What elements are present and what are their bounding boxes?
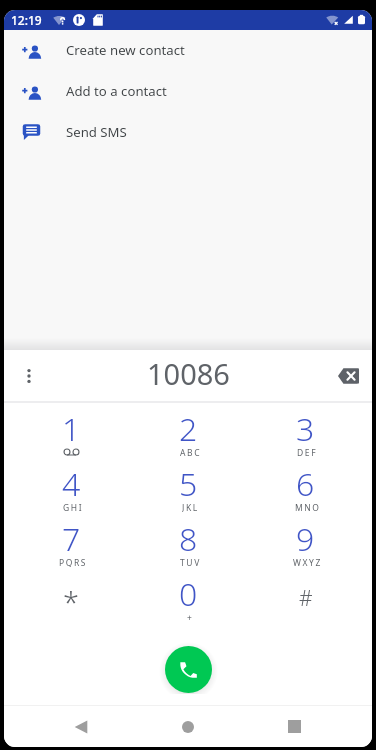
staticText: 6 [296, 462, 315, 504]
button[interactable]: Call [165, 646, 212, 693]
button[interactable]: * [12, 568, 130, 623]
staticText: Add to a contact [66, 82, 167, 100]
button[interactable]: 0 [130, 568, 247, 623]
staticText: * [63, 582, 79, 621]
staticText: + [187, 612, 194, 622]
staticText: ABC [180, 447, 202, 457]
button[interactable]: Home [134, 706, 241, 747]
staticText: MNO [295, 502, 321, 512]
button[interactable]: 4 [12, 458, 130, 513]
staticText: TUV [180, 557, 201, 567]
button[interactable]: Send SMS [4, 111, 372, 152]
staticText: 7 [62, 517, 81, 559]
staticText: PQRS [59, 557, 88, 567]
button[interactable]: 9 [247, 513, 364, 568]
staticText: 1 [62, 407, 81, 449]
staticText: 5 [179, 462, 198, 504]
button[interactable]: 5 [130, 458, 247, 513]
staticText: GHI [63, 502, 84, 512]
button[interactable]: 3 [247, 403, 364, 458]
staticText: WXYZ [293, 557, 322, 567]
button[interactable]: Back [28, 706, 134, 747]
staticText: 0 [179, 572, 198, 614]
button[interactable]: Backspace [333, 361, 363, 391]
staticText: JKL [182, 502, 199, 512]
staticText: # [299, 584, 313, 613]
button[interactable]: Add to a contact [4, 70, 372, 111]
button[interactable]: More options [15, 362, 43, 390]
button[interactable]: Create new contact [4, 29, 372, 70]
button[interactable]: 2 [130, 403, 247, 458]
button[interactable]: 6 [247, 458, 364, 513]
staticText: DEF [297, 447, 318, 457]
button[interactable]: # [247, 568, 364, 623]
staticText: 10086 [147, 354, 230, 393]
staticText: Create new contact [66, 41, 185, 59]
staticText: 8 [179, 517, 198, 559]
button[interactable]: 8 [130, 513, 247, 568]
button[interactable]: Recent apps [241, 706, 348, 747]
button[interactable]: 1 [12, 403, 130, 458]
staticText: 4 [62, 462, 81, 504]
button[interactable]: 7 [12, 513, 130, 568]
staticText: 3 [296, 407, 315, 449]
staticText: 2 [179, 407, 198, 449]
staticText: 12:19 [11, 12, 42, 28]
staticText: 9 [296, 517, 315, 559]
staticText: Send SMS [66, 123, 127, 141]
